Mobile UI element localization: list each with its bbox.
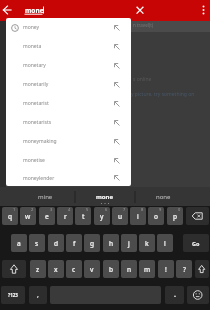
staticText: j (128, 239, 130, 248)
staticText: k (145, 239, 149, 248)
staticText: s online (133, 76, 152, 83)
button[interactable]: Go (183, 234, 209, 252)
staticText: y picture, try something on (131, 91, 195, 98)
staticText: moneta (23, 43, 113, 50)
button[interactable]: i (130, 207, 146, 225)
button[interactable]: ! (158, 260, 174, 278)
button[interactable]: o (148, 207, 164, 225)
button[interactable]: f (66, 234, 82, 252)
staticText: 2 (31, 207, 34, 212)
button[interactable]: d (48, 234, 64, 252)
button[interactable] (196, 0, 210, 21)
button[interactable]: moneymaking (6, 132, 131, 151)
staticText: n travel(t) (133, 22, 154, 28)
staticText: ! (165, 265, 167, 274)
button[interactable]: monetarists (6, 113, 131, 132)
button[interactable]: u (112, 207, 128, 225)
staticText: l (164, 239, 166, 248)
staticText: Go (192, 240, 200, 247)
staticText: z (36, 265, 40, 274)
button[interactable] (2, 260, 26, 278)
staticText: x (54, 265, 58, 274)
staticText: m (144, 265, 151, 274)
staticText: 5 (86, 207, 89, 212)
button[interactable]: e (39, 207, 55, 225)
staticText: , (37, 290, 39, 300)
button[interactable]: none (133, 187, 193, 206)
button[interactable]: x (48, 260, 64, 278)
button[interactable]: l (157, 234, 173, 252)
staticText: ? (183, 265, 186, 274)
button[interactable] (186, 207, 209, 225)
button[interactable]: g (84, 234, 100, 252)
button[interactable]: ?123 (1, 286, 25, 304)
staticText: p (173, 212, 178, 221)
button[interactable]: q (2, 207, 18, 225)
staticText: w (25, 212, 31, 221)
staticText: . (174, 290, 176, 300)
button[interactable]: monetarily (6, 75, 131, 94)
button[interactable]: a (11, 234, 27, 252)
staticText: 0 (178, 207, 181, 212)
button[interactable]: b (103, 260, 119, 278)
staticText: mone (25, 6, 44, 15)
button[interactable]: moneta (6, 37, 131, 56)
button[interactable]: m (139, 260, 155, 278)
staticText: 1 (13, 207, 16, 212)
button[interactable]: monetary (6, 56, 131, 75)
button[interactable]: moneylender (6, 170, 131, 186)
staticText: i (137, 212, 139, 221)
button[interactable]: mine (15, 187, 75, 206)
staticText: mine (38, 193, 53, 201)
button[interactable] (0, 0, 18, 21)
button[interactable]: c (66, 260, 82, 278)
staticText: none (156, 193, 171, 201)
staticText: 4 (68, 207, 71, 212)
button[interactable]: j (121, 234, 137, 252)
button[interactable]: s (29, 234, 45, 252)
staticText: g (90, 239, 95, 248)
button[interactable]: w (20, 207, 36, 225)
staticText: n (127, 265, 132, 274)
button[interactable] (187, 286, 209, 304)
button[interactable]: mone (75, 187, 135, 206)
staticText: 8 (141, 207, 144, 212)
button[interactable]: k (139, 234, 155, 252)
button[interactable]: n (121, 260, 137, 278)
staticText: h (109, 239, 114, 248)
button[interactable]: , (29, 286, 47, 304)
staticText: monetarily (23, 81, 113, 88)
button[interactable] (132, 0, 148, 21)
staticText: r (64, 212, 67, 221)
button[interactable]: p (167, 207, 183, 225)
button[interactable] (195, 260, 209, 278)
button[interactable]: monetise (6, 151, 131, 170)
button[interactable]: . (165, 286, 184, 304)
button[interactable]: r (57, 207, 73, 225)
button[interactable]: v (84, 260, 100, 278)
staticText: u (118, 212, 123, 221)
staticText: s (35, 239, 39, 248)
button[interactable]: z (30, 260, 46, 278)
button[interactable]: ? (176, 260, 192, 278)
staticText: d (54, 239, 59, 248)
staticText: o (154, 212, 158, 221)
button[interactable]: t (75, 207, 91, 225)
staticText: monetise (23, 157, 113, 164)
staticText: a (17, 239, 21, 248)
button[interactable]: y (94, 207, 110, 225)
staticText: ?123 (8, 292, 18, 298)
staticText: 7 (123, 207, 126, 212)
staticText: monetarists (23, 119, 113, 126)
staticText: 9 (159, 207, 162, 212)
button[interactable]: money (6, 18, 131, 37)
staticText: f (73, 239, 76, 248)
button[interactable]: h (103, 234, 119, 252)
staticText: e (45, 212, 49, 221)
staticText: moneylender (23, 175, 113, 182)
staticText: moneymaking (23, 138, 113, 145)
staticText: t (82, 212, 85, 221)
staticText: q (8, 212, 13, 221)
button[interactable]: monetarist (6, 94, 131, 113)
